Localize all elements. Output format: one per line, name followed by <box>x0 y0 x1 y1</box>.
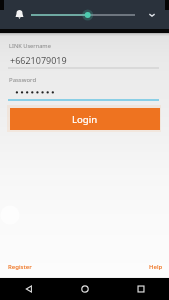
button[interactable]: Back <box>0 278 57 300</box>
staticText: LINK Username <box>9 42 51 50</box>
button[interactable]: Notifications <box>13 8 26 21</box>
button[interactable]: Expand <box>146 9 157 20</box>
button[interactable]: Help <box>149 263 163 271</box>
button[interactable]: Login <box>10 108 160 130</box>
button[interactable]: Home <box>57 278 113 300</box>
button[interactable]: Recent apps <box>113 278 169 300</box>
staticText: Login <box>72 113 98 126</box>
button[interactable]: Register <box>8 263 32 271</box>
staticText: Password <box>9 76 37 84</box>
staticText: +6621079019 <box>10 54 67 66</box>
